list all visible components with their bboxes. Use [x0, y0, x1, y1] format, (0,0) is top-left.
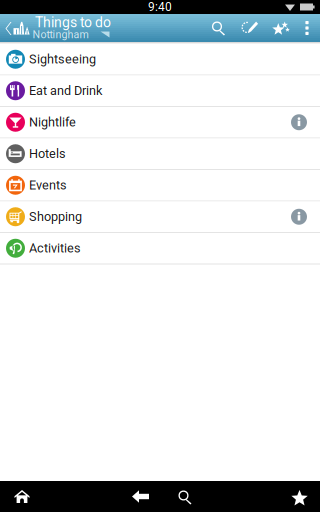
button[interactable]: Things to do: [32, 16, 111, 40]
button[interactable]: Shopping: [0, 201, 320, 233]
button[interactable]: Activities: [0, 233, 320, 264]
button[interactable]: Search: [165, 481, 204, 512]
button[interactable]: Events: [0, 170, 320, 201]
button[interactable]: Home: [0, 481, 44, 512]
staticText: Things to do: [35, 14, 111, 31]
staticText: Eat and Drink: [29, 83, 102, 98]
button[interactable]: Nightlife: [0, 107, 320, 138]
button[interactable]: Hotels: [0, 138, 320, 170]
button[interactable]: Write a review: [234, 14, 265, 42]
button[interactable]: Search: [203, 14, 234, 42]
staticText: Shopping: [29, 209, 82, 224]
staticText: Events: [29, 178, 67, 193]
button[interactable]: Back: [116, 481, 165, 512]
staticText: Nightlife: [29, 115, 76, 130]
button[interactable]: Back: [2, 14, 32, 42]
button[interactable]: Eat and Drink: [0, 75, 320, 107]
button[interactable]: Favorites: [276, 481, 320, 512]
staticText: Hotels: [29, 146, 66, 161]
button[interactable]: Saved: [265, 14, 296, 42]
staticText: 9:40: [148, 0, 172, 14]
button[interactable]: Sightseeing: [0, 44, 320, 75]
staticText: Activities: [29, 241, 81, 256]
staticText: Sightseeing: [29, 52, 96, 67]
button[interactable]: More options: [296, 14, 318, 42]
staticText: Nottingham: [32, 28, 88, 41]
